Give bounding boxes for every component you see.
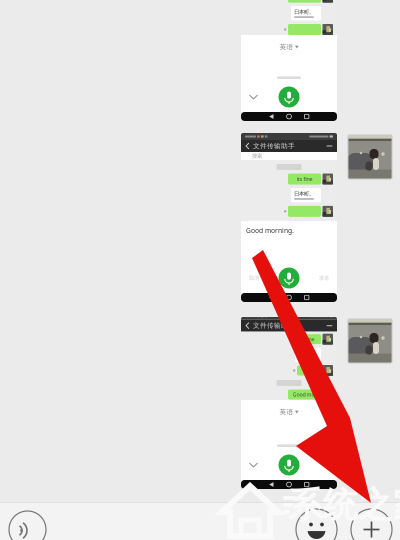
staticText: 英语 — [279, 43, 293, 51]
staticText: its fine — [296, 175, 312, 183]
staticText: 搜索 — [252, 153, 262, 159]
staticText: its fine — [298, 336, 314, 343]
staticText: 发送 — [319, 275, 329, 281]
staticText: 英语 — [279, 408, 293, 416]
staticText: 文件传输助手 — [253, 142, 295, 150]
button[interactable]: Emoji — [296, 509, 337, 540]
staticText: 日本町。 — [298, 350, 318, 357]
button[interactable]: More — [351, 509, 392, 540]
staticText: 日本町。 — [294, 9, 314, 15]
staticText: 日本町。 — [294, 190, 314, 197]
staticText: 取消 — [249, 275, 259, 281]
staticText: 系统之家 — [288, 484, 400, 527]
staticText: 文件传输助手 — [253, 322, 295, 330]
staticText: Good mor — [292, 391, 316, 398]
staticText: Good morning. — [246, 226, 294, 235]
button[interactable]: Voice input — [9, 511, 46, 540]
